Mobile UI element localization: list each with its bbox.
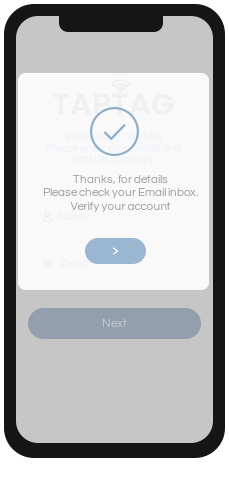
staticText: start using the app: [71, 154, 156, 165]
staticText: Welcome to TAPTAG: [65, 132, 162, 143]
staticText: Verify your account: [70, 200, 170, 212]
staticText: Name: [58, 211, 89, 222]
button[interactable]: Next: [28, 308, 201, 339]
button[interactable]: Continue: [85, 238, 146, 264]
staticText: Please check your Email inbox.: [43, 186, 198, 198]
staticText: TAPTAG: [52, 82, 175, 125]
staticText: Please enter your details and: [46, 143, 180, 154]
staticText: Thanks, for details: [73, 173, 168, 185]
staticText: Next: [102, 317, 127, 330]
